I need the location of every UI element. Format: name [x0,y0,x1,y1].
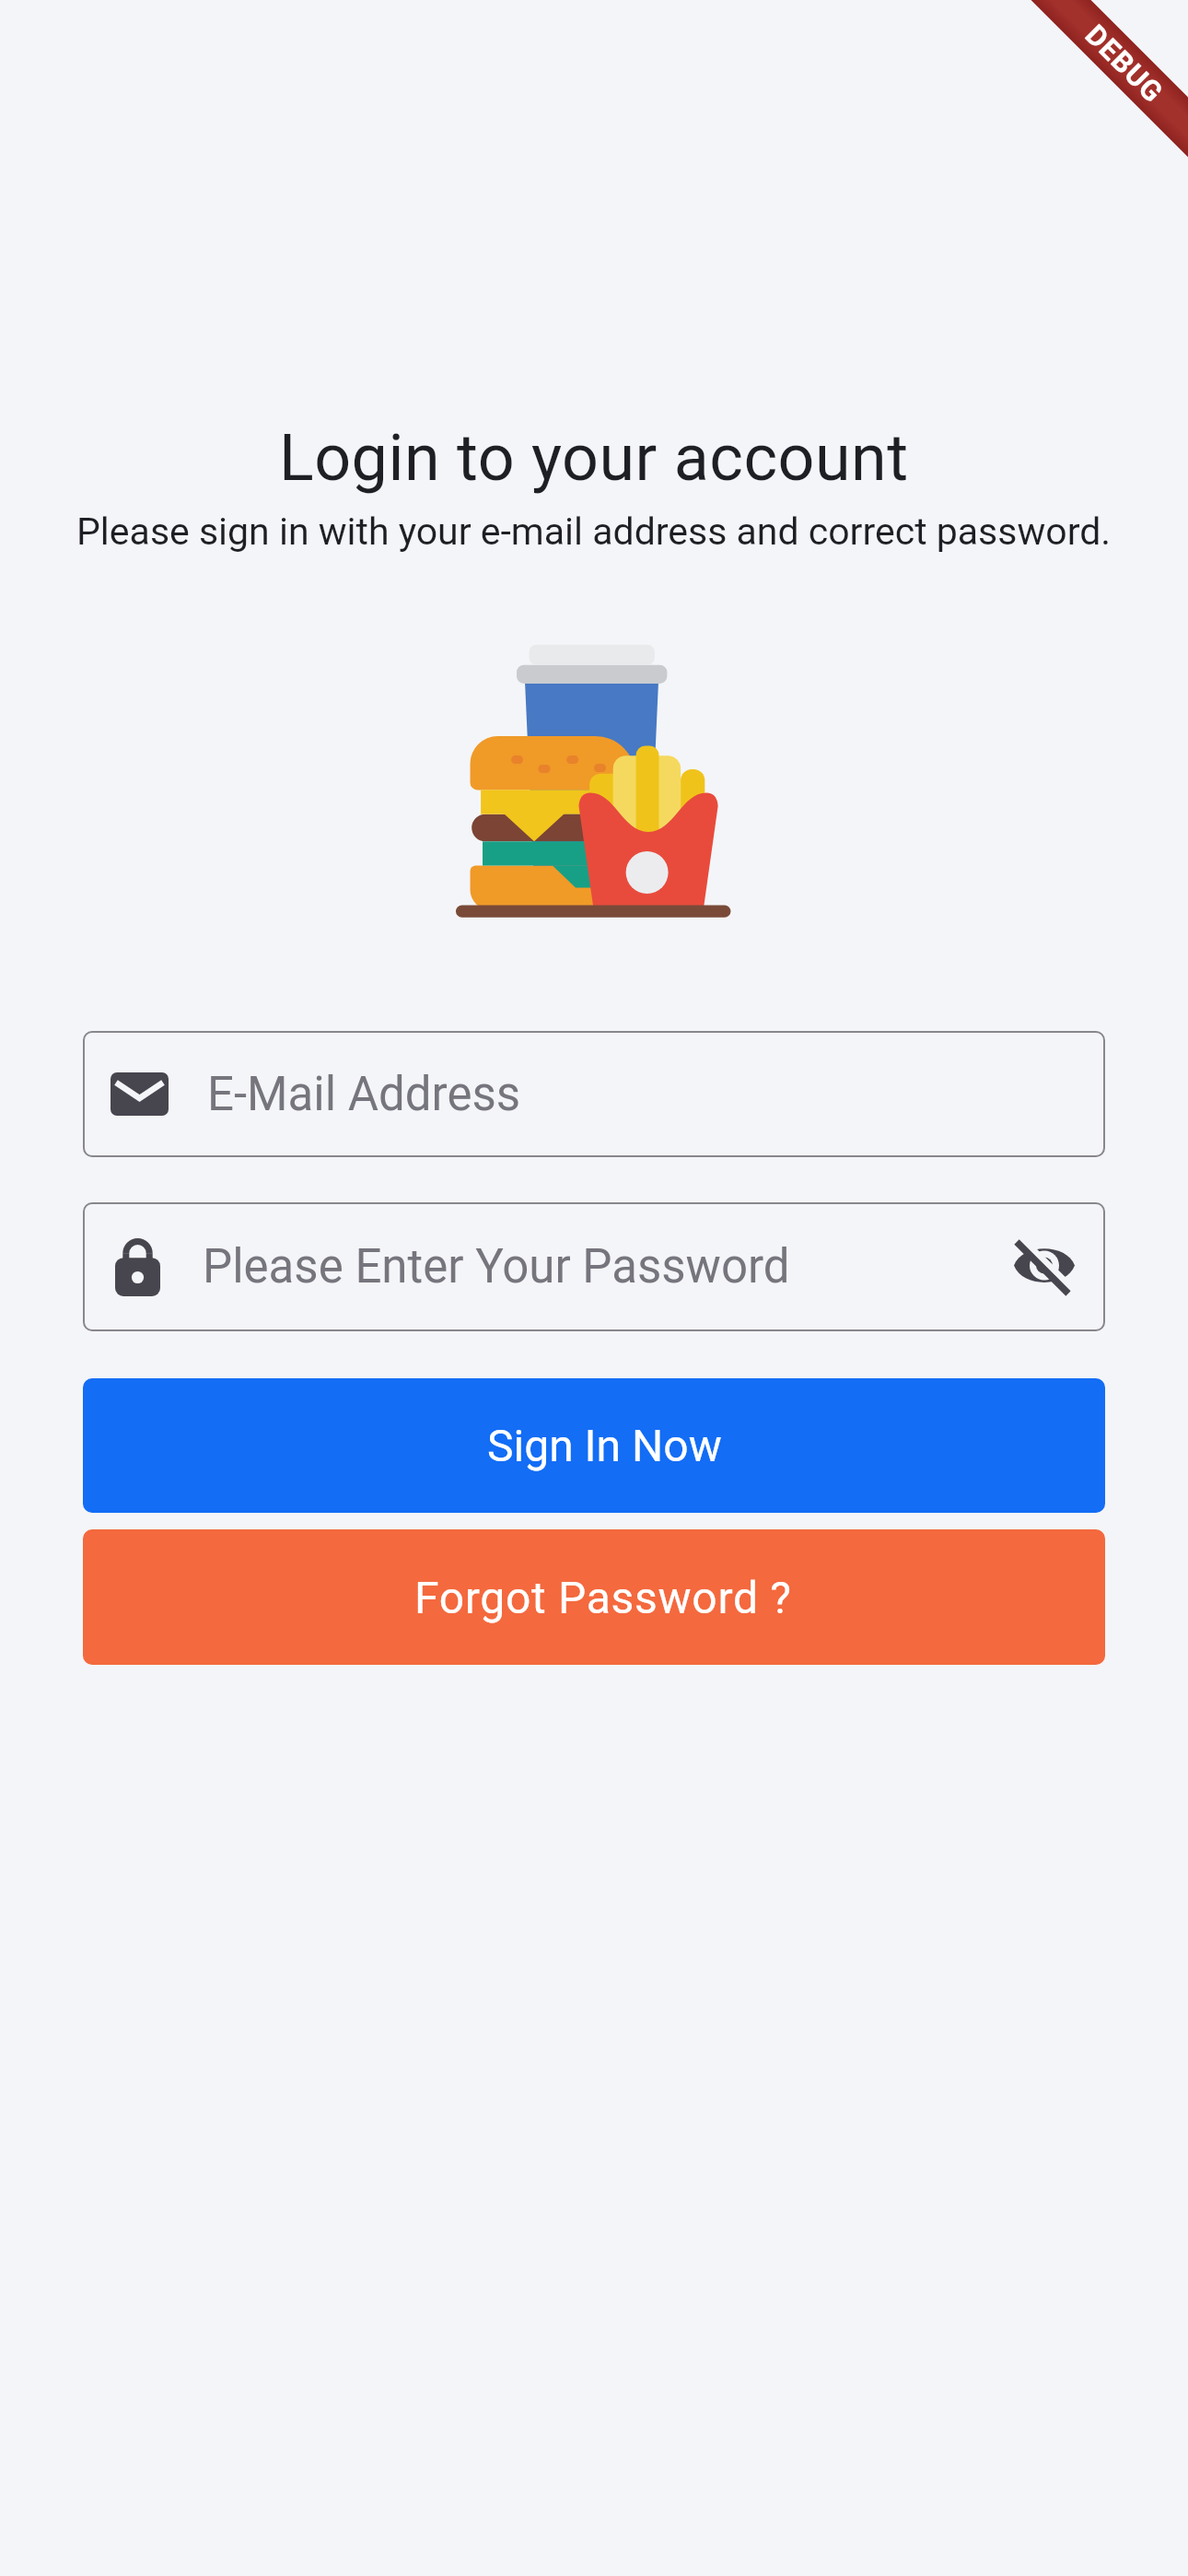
button[interactable]: Forgot Password ? [83,1529,1105,1665]
button[interactable]: Please Enter Your Password [83,1202,1105,1331]
staticText: Login to your account [279,420,909,496]
staticText: DEBUG [1079,18,1170,109]
button[interactable]: E-Mail Address [83,1031,1105,1157]
staticText: Sign In Now [487,1420,722,1471]
staticText: Please Enter Your Password [203,1239,790,1294]
staticText: Forgot Password ? [414,1572,792,1623]
staticText: Please sign in with your e-mail address … [76,509,1112,554]
staticText: E-Mail Address [207,1067,521,1122]
button[interactable]: Sign In Now [83,1378,1105,1513]
